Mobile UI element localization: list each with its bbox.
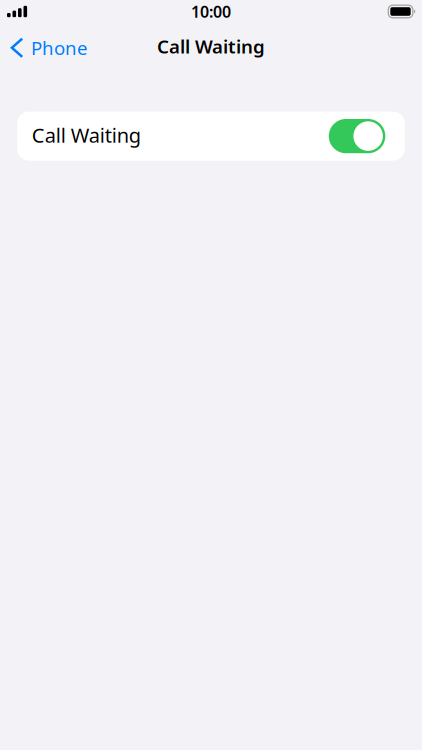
button[interactable]: Call Waiting — [329, 119, 385, 153]
staticText: Call Waiting — [157, 34, 265, 59]
staticText: Phone — [31, 35, 88, 60]
staticText: Call Waiting — [32, 122, 141, 148]
button[interactable]: Call Waiting — [17, 111, 405, 161]
staticText: 10:00 — [191, 1, 231, 22]
button[interactable]: Phone — [5, 28, 93, 65]
